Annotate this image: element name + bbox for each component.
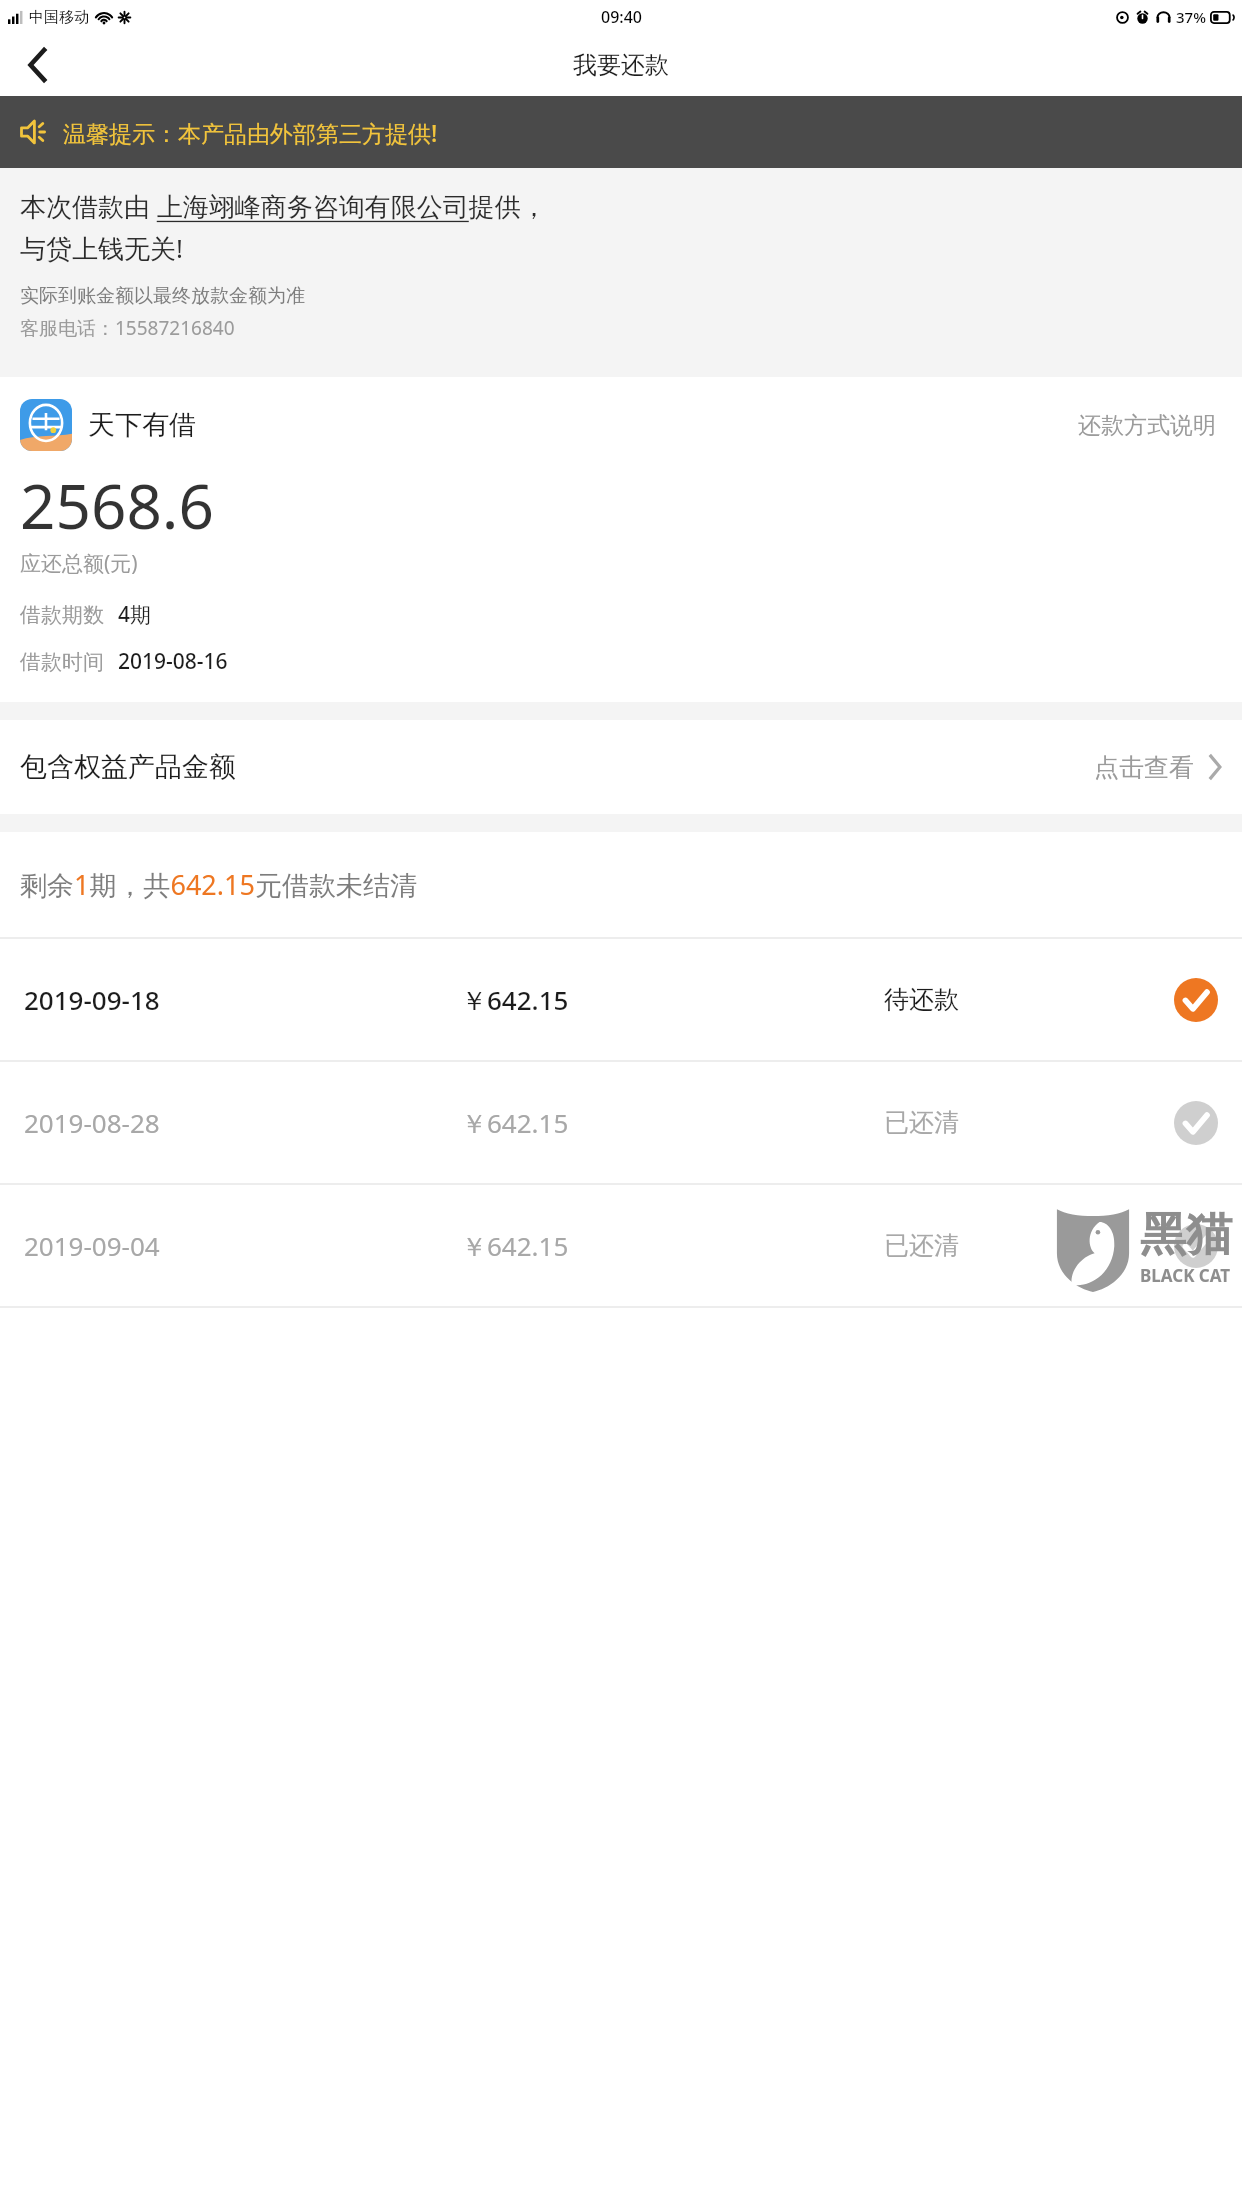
staticText: BLACK CAT [1140, 1264, 1231, 1287]
staticText: 温馨提示：本产品由外部第三方提供! [63, 117, 438, 148]
staticText: 2019-08-28 [24, 1105, 160, 1140]
staticText: 我要还款 [573, 50, 669, 80]
staticText: ￥642.15 [461, 1105, 569, 1141]
staticText: 借款时间 [20, 649, 104, 675]
staticText: 37% [1176, 7, 1206, 27]
staticText: 借款期数 [20, 602, 104, 628]
staticText: 4期 [118, 600, 152, 629]
staticText: ￥642.15 [461, 1228, 569, 1264]
staticText: 点击查看 [1094, 752, 1194, 783]
staticText: 2019-09-04 [24, 1228, 160, 1263]
staticText: 已还清 [884, 1230, 959, 1261]
staticText: 还款方式说明 [1078, 411, 1216, 440]
staticText: 2568.6 [20, 463, 214, 547]
staticText: 实际到账金额以最终放款金额为准 [20, 284, 305, 308]
staticText: 2019-09-18 [24, 982, 160, 1017]
button[interactable]: 2019-09-18 [0, 939, 1242, 1060]
staticText: 待还款 [884, 984, 959, 1015]
button[interactable]: Back [10, 37, 66, 93]
staticText: 黑猫 [1140, 1206, 1232, 1264]
staticText: 已还清 [884, 1107, 959, 1138]
staticText: 本次借款由 上海翊峰商务咨询有限公司提供， 与贷上钱无关! [20, 188, 547, 266]
staticText: 09:40 [601, 6, 642, 28]
button[interactable]: 包含权益产品金额 [0, 720, 1242, 814]
button[interactable]: 还款方式说明 [1072, 405, 1222, 446]
staticText: 剩余1期，共642.15元借款未结清 [20, 866, 417, 903]
button[interactable]: 2019-08-28 [0, 1062, 1242, 1183]
staticText: 中国移动 [29, 8, 89, 27]
staticText: ￥642.15 [461, 982, 569, 1018]
staticText: 天下有借 [88, 408, 196, 442]
staticText: 2019-08-16 [118, 647, 228, 676]
button[interactable]: 2019-09-04 [0, 1185, 1242, 1306]
staticText: 包含权益产品金额 [20, 750, 236, 784]
staticText: 应还总额(元) [20, 549, 138, 578]
staticText: 客服电话：15587216840 [20, 315, 235, 341]
